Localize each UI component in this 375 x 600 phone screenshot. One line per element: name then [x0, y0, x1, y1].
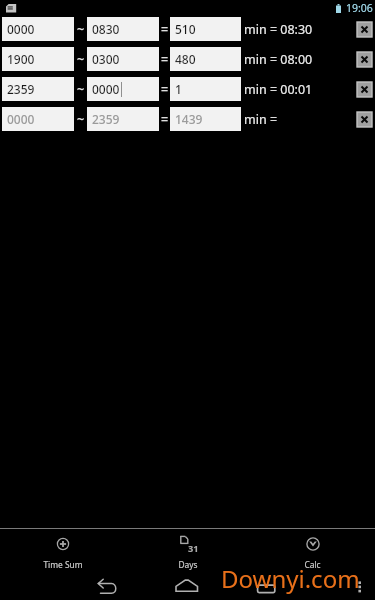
- staticText: Time Sum: [43, 559, 83, 570]
- staticText: Downyi.com: [221, 562, 360, 595]
- staticText: 19:06: [346, 1, 373, 15]
- button[interactable]: 1900: [2, 47, 74, 71]
- staticText: 0000: [92, 81, 120, 97]
- button[interactable]: 480: [170, 47, 241, 71]
- staticText: =: [161, 21, 169, 38]
- staticText: 1900: [7, 51, 35, 67]
- staticText: min = 08:30: [244, 21, 313, 38]
- staticText: 0300: [92, 51, 120, 67]
- button[interactable]: Recent apps: [255, 576, 279, 598]
- staticText: ~: [77, 51, 85, 68]
- button[interactable]: 0830: [87, 17, 159, 41]
- button[interactable]: Clear row: [357, 82, 372, 97]
- staticText: Days: [178, 559, 198, 570]
- button[interactable]: 0000: [2, 107, 74, 131]
- staticText: 31: [188, 542, 199, 555]
- staticText: =: [161, 111, 169, 128]
- button[interactable]: Time Sum: [0, 529, 125, 573]
- staticText: 1439: [175, 111, 203, 127]
- staticText: ~: [77, 111, 85, 128]
- button[interactable]: 0000: [87, 77, 159, 101]
- button[interactable]: 2359: [87, 107, 159, 131]
- staticText: Calc: [304, 559, 321, 570]
- button[interactable]: Home: [175, 576, 200, 598]
- staticText: 0000: [7, 111, 35, 127]
- button[interactable]: 2359: [2, 77, 74, 101]
- button[interactable]: Back: [93, 578, 122, 600]
- staticText: 0830: [92, 21, 120, 37]
- staticText: 480: [175, 51, 196, 67]
- staticText: min =: [244, 111, 278, 128]
- button[interactable]: Clear row: [357, 22, 372, 37]
- staticText: 1: [175, 81, 182, 97]
- staticText: 0000: [7, 21, 35, 37]
- staticText: min = 00:01: [244, 81, 313, 98]
- staticText: 510: [175, 21, 196, 37]
- staticText: =: [161, 51, 169, 68]
- button[interactable]: 1: [170, 77, 241, 101]
- staticText: ~: [77, 21, 85, 38]
- staticText: 2359: [92, 111, 120, 127]
- button[interactable]: 31: [125, 529, 250, 573]
- staticText: min = 08:00: [244, 51, 313, 68]
- button[interactable]: 0000: [2, 17, 74, 41]
- button[interactable]: 0300: [87, 47, 159, 71]
- staticText: 2359: [7, 81, 35, 97]
- button[interactable]: 1439: [170, 107, 241, 131]
- button[interactable]: More options: [355, 576, 367, 598]
- staticText: =: [161, 81, 169, 98]
- button[interactable]: 510: [170, 17, 241, 41]
- button[interactable]: Clear row: [357, 112, 372, 127]
- button[interactable]: Clear row: [357, 52, 372, 67]
- button[interactable]: Calc: [250, 529, 375, 573]
- staticText: ~: [77, 81, 85, 98]
